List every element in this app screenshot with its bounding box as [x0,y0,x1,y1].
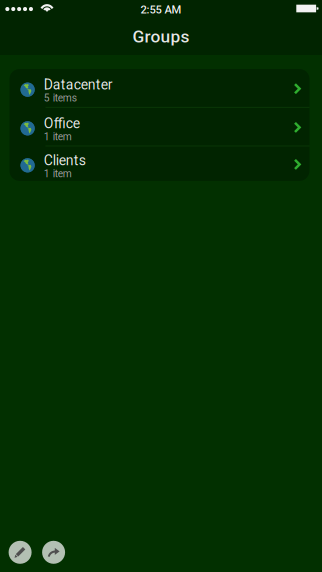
button[interactable]: Share [42,541,65,564]
staticText: 5 items [44,92,77,104]
button[interactable]: Edit [9,541,32,564]
staticText: Office [44,115,80,132]
staticText: 2:55 AM [140,3,181,16]
staticText: 1 item [44,131,72,143]
staticText: Datacenter [44,77,113,93]
staticText: Groups [132,26,189,47]
staticText: Clients [44,152,86,169]
button[interactable]: Datacenter [9,69,309,108]
button[interactable]: Office [9,108,309,146]
button[interactable]: Clients [9,146,309,181]
staticText: 1 item [44,168,72,180]
